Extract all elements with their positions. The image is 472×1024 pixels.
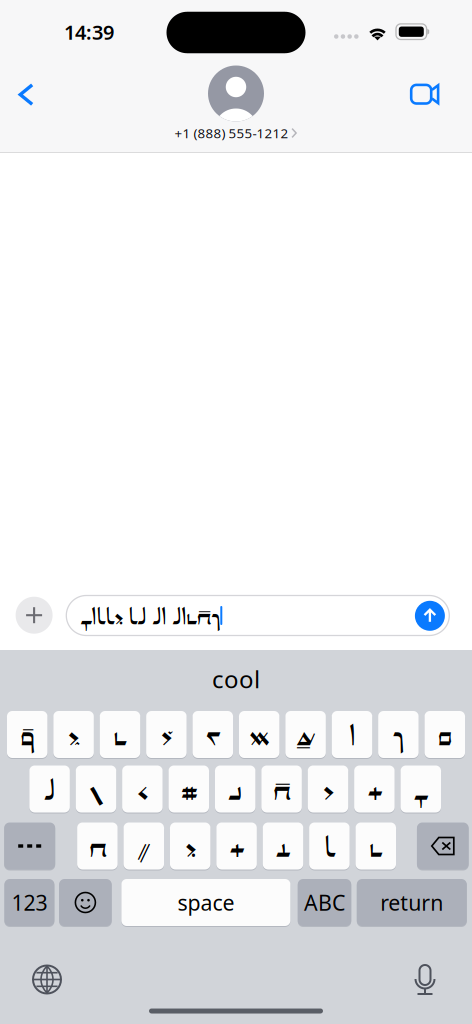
button[interactable]: 𐺗 [215,764,255,813]
button[interactable]: FaceTime [403,72,447,116]
staticText: +1 (888) 555-1212 [174,124,288,142]
button[interactable]: 𐺛 [124,821,164,870]
button[interactable]: Send [412,598,448,634]
staticText: 14:39 [64,19,114,45]
staticText: 𐺥 [161,715,172,754]
button[interactable]: 𐺀 [332,710,372,759]
staticText: 𐺘 [181,770,197,808]
staticText: 𐺓 [367,770,382,808]
staticText: 123 [11,888,47,917]
staticText: 𐺩 [20,715,35,754]
staticText: space [177,888,234,917]
button[interactable]: 𐺡 [309,821,350,870]
button[interactable]: 𐺃 [76,764,116,813]
button[interactable]: space [121,878,290,927]
button[interactable]: 𐺐 [239,710,279,759]
staticText: 𐺤 [68,715,79,754]
staticText: 𐺃 [89,770,103,808]
staticText: 𐺕𐺎𐺙𐺀𐺠 𐺀𐺠 𐺠𐺡 𐺚𐺡𐺡𐺀𐺜 [80,600,220,631]
button[interactable]: 𐺙 [100,710,140,759]
staticText: 𐺋 [437,715,452,754]
staticText: 𐺣 [323,770,333,808]
button[interactable]: 𐺅 [192,710,233,759]
button[interactable]: Add attachment [12,593,56,637]
staticText: 𐺐 [249,715,269,754]
staticText: 𐺎 [273,770,291,808]
button[interactable]: 𐺥 [146,710,187,759]
button[interactable]: 𐺈 [285,710,326,759]
staticText: ABC [304,888,345,917]
staticText: 𐺚 [185,827,195,865]
staticText: 𐺙 [369,827,382,865]
staticText: 𐺓 [229,827,244,865]
button[interactable]: 𐺏 [122,764,163,813]
button[interactable]: Delete [417,821,469,870]
button[interactable]: 𐺕 [378,710,419,759]
button[interactable]: Dictation [403,957,447,1001]
staticText: 𐺙 [113,715,126,754]
button[interactable]: More characters [4,821,55,870]
button[interactable]: 123 [4,878,54,927]
staticText: 𐺛 [137,827,151,865]
button[interactable]: 𐺓 [354,764,395,813]
staticText: 𐺡 [324,827,335,865]
staticText: 𐺗 [228,770,243,808]
button[interactable]: ABC [298,878,351,927]
staticText: 𐺄 [275,827,290,865]
button[interactable]: return [357,878,467,927]
button[interactable]: Emoji [59,878,112,927]
staticText: return [380,888,443,917]
button[interactable]: 𐺩 [7,710,47,759]
button[interactable]: 𐺎 [261,764,302,813]
button[interactable]: +1 (888) 555-1212 [126,64,346,142]
button[interactable]: 𐺣 [308,764,348,813]
button[interactable]: 𐺋 [424,710,465,759]
button[interactable]: 𐺍 [77,821,118,870]
staticText: 𐺈 [297,715,315,754]
staticText: cool [212,663,260,695]
button[interactable]: 𐺓 [216,821,257,870]
button[interactable]: Switch keyboard [25,957,69,1001]
button[interactable]: 𐺘 [168,764,209,813]
button[interactable]: 𐺄 [263,821,303,870]
button[interactable]: 𐺤 [53,710,94,759]
staticText: 𐺜 [414,770,428,808]
staticText: 𐺠 [44,770,55,808]
staticText: 𐺕 [393,715,404,754]
button[interactable]: 𐺚 [170,821,210,870]
staticText: 𐺀 [349,715,355,754]
button[interactable]: 𐺜 [400,764,441,813]
staticText: 𐺍 [88,827,106,865]
button[interactable]: Back [4,73,48,117]
staticText: 𐺏 [137,770,147,808]
button[interactable]: 𐺙 [355,821,396,870]
button[interactable]: 𐺠 [29,764,70,813]
staticText: 𐺅 [206,715,220,754]
